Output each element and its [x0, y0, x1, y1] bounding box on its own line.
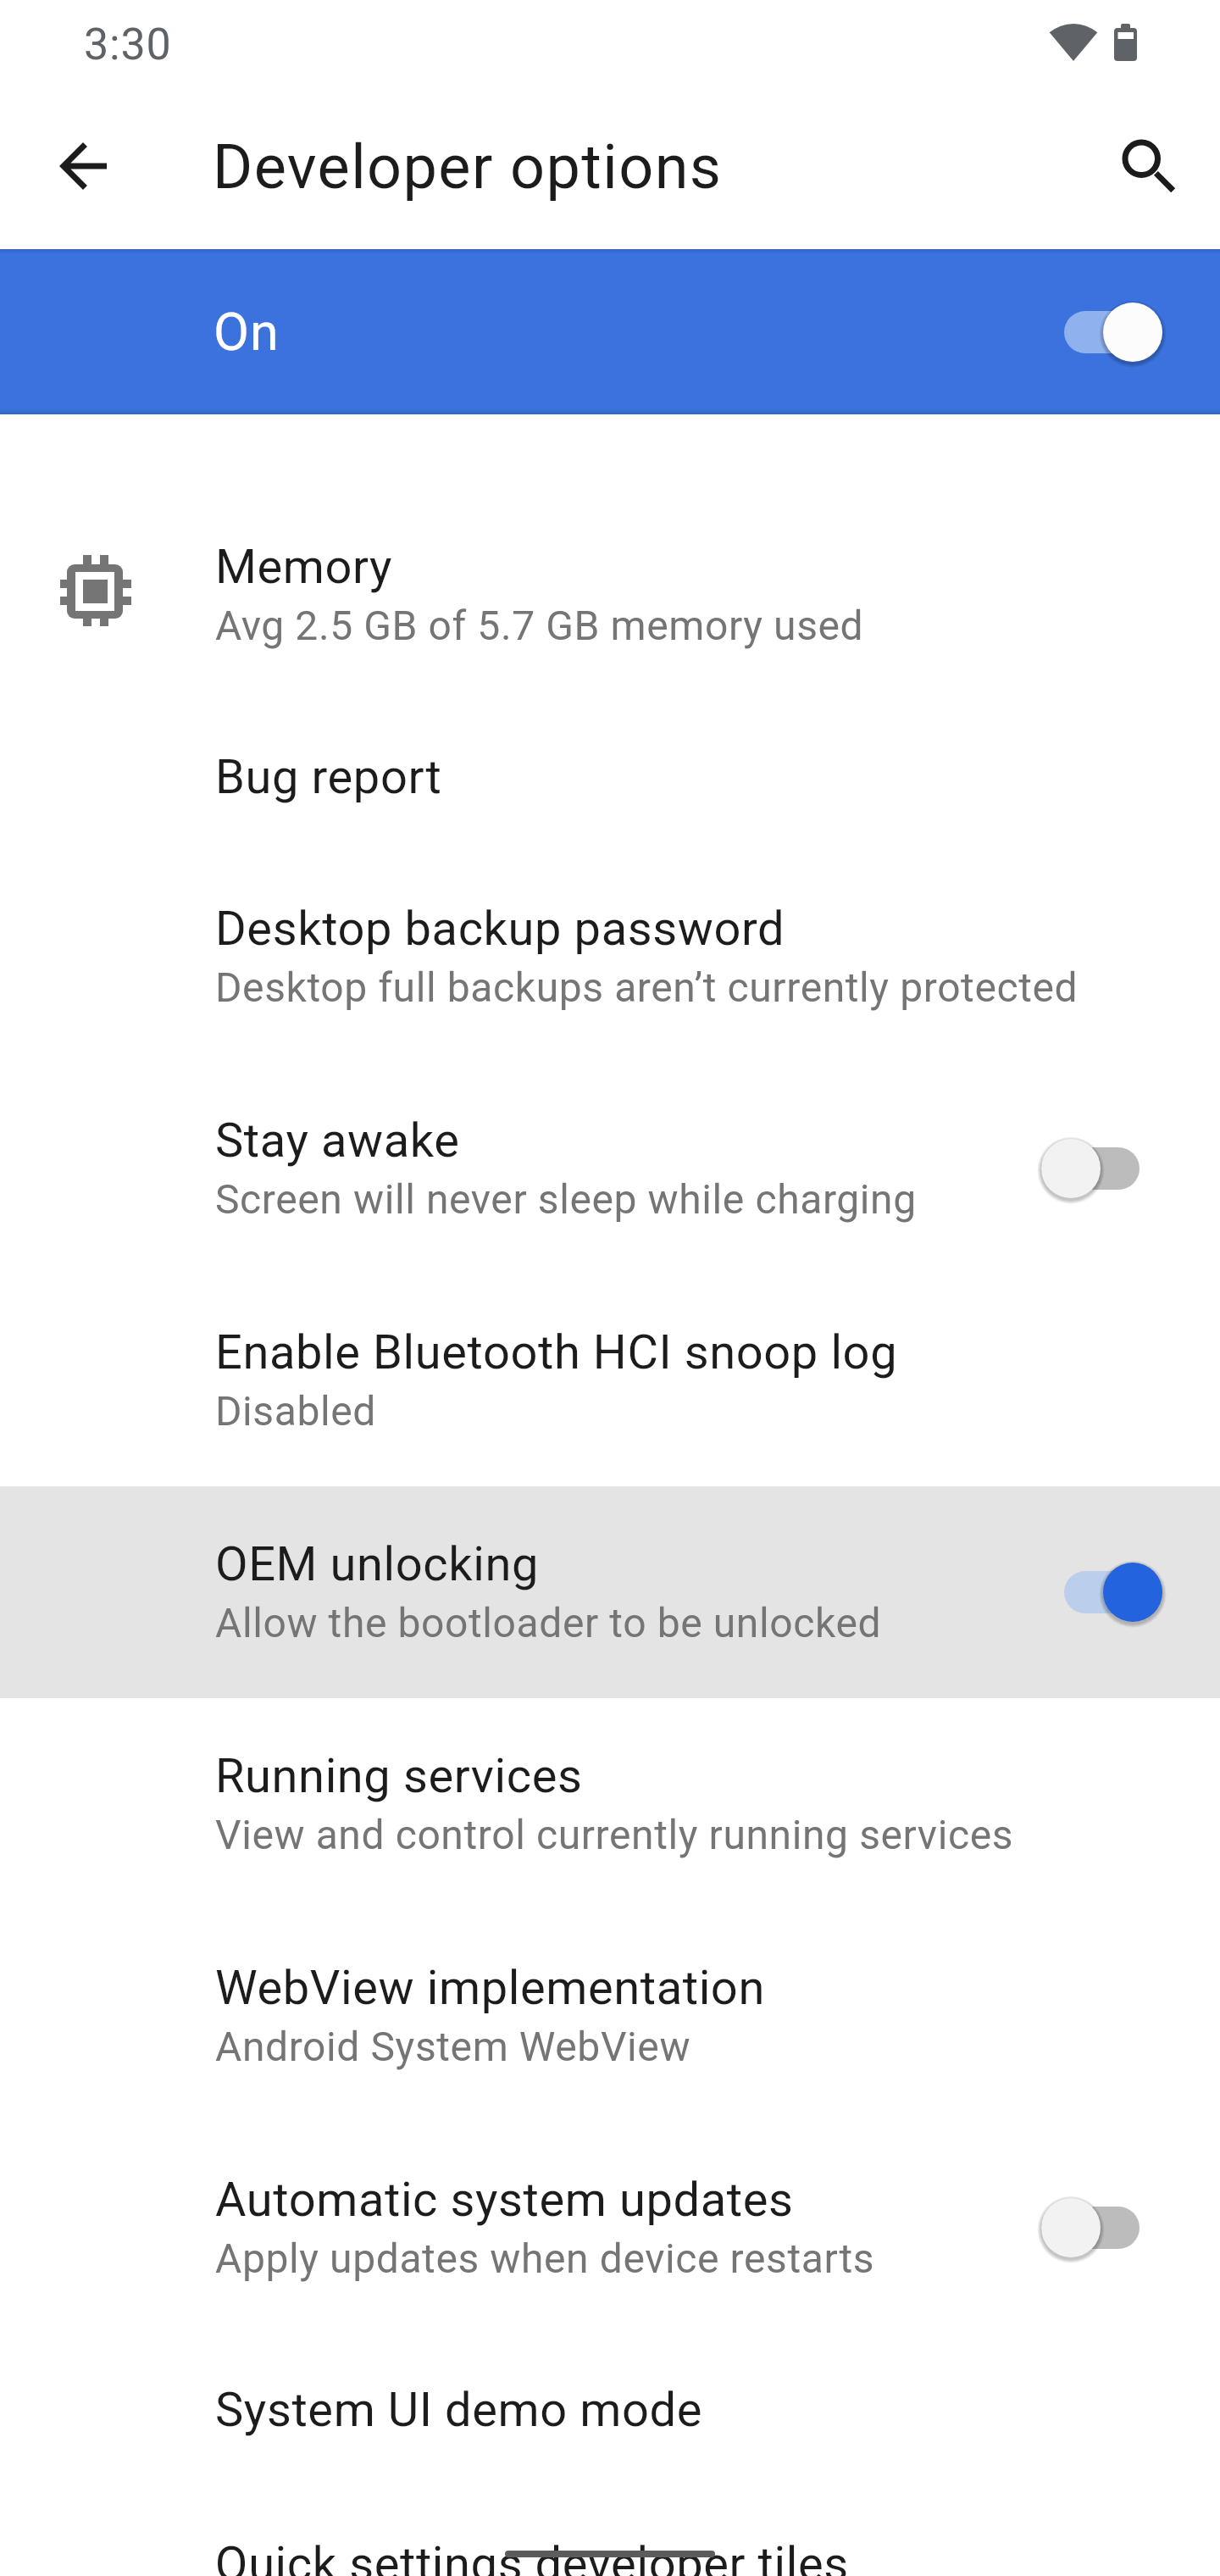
staticText: Screen will never sleep while charging: [215, 1175, 917, 1223]
staticText: Stay awake: [215, 1113, 460, 1169]
staticText: View and control currently running servi…: [215, 1811, 1014, 1858]
staticText: Enable Bluetooth HCI snoop log: [215, 1324, 898, 1380]
button[interactable]: Bug report: [0, 701, 1220, 851]
staticText: Apply updates when device restarts: [215, 2235, 875, 2282]
staticText: Disabled: [215, 1387, 377, 1435]
staticText: Avg 2.5 GB of 5.7 GB memory used: [215, 602, 864, 649]
staticText: OEM unlocking: [215, 1536, 539, 1592]
staticText: Android System WebView: [215, 2023, 691, 2070]
button[interactable]: Stay awake: [0, 1063, 1220, 1274]
staticText: Memory: [215, 539, 393, 595]
staticText: Desktop backup password: [215, 901, 785, 957]
button[interactable]: Automatic system updates: [0, 2122, 1220, 2334]
button[interactable]: Quick settings developer tiles: [0, 2488, 1220, 2576]
button[interactable]: OEM unlocking: [0, 1486, 1220, 1698]
staticText: Developer options: [213, 131, 723, 203]
staticText: On: [213, 302, 280, 362]
staticText: 3:30: [84, 19, 172, 70]
button[interactable]: Search: [1113, 130, 1184, 202]
button[interactable]: Running services: [0, 1698, 1220, 1910]
button[interactable]: System UI demo mode: [0, 2334, 1220, 2488]
button[interactable]: Desktop backup password: [0, 851, 1220, 1063]
button[interactable]: Navigate up: [47, 130, 119, 202]
staticText: Quick settings developer tiles: [215, 2536, 849, 2576]
button[interactable]: On: [0, 249, 1220, 414]
staticText: Desktop full backups aren’t currently pr…: [215, 963, 1079, 1011]
staticText: WebView implementation: [215, 1960, 765, 2016]
button[interactable]: Enable Bluetooth HCI snoop log: [0, 1274, 1220, 1486]
button[interactable]: Memory: [0, 489, 1220, 701]
staticText: Running services: [215, 1748, 583, 1804]
staticText: System UI demo mode: [215, 2382, 703, 2438]
staticText: Allow the bootloader to be unlocked: [215, 1599, 882, 1646]
staticText: Automatic system updates: [215, 2172, 794, 2228]
button[interactable]: WebView implementation: [0, 1910, 1220, 2122]
staticText: Bug report: [215, 749, 442, 805]
